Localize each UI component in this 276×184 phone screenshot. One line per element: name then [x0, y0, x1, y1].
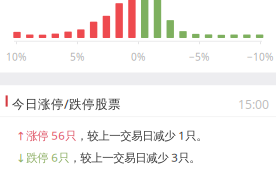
- staticText: 0%: [131, 50, 145, 64]
- staticText: 今日涨停/跌停股票: [12, 95, 121, 112]
- staticText: 10%: [6, 50, 26, 64]
- button[interactable]: 今日涨停/跌停股票: [0, 86, 276, 116]
- staticText: 15:00: [238, 96, 269, 113]
- staticText: ，较上一交易日减少 1只。: [76, 128, 207, 143]
- staticText: ↑涨停 56只: [16, 128, 76, 143]
- staticText: 5%: [70, 50, 84, 64]
- staticText: ，较上一交易日减少 3只。: [69, 150, 200, 165]
- staticText: ↓跌停 6只: [16, 150, 69, 165]
- staticText: −5%: [189, 50, 209, 64]
- staticText: −10%: [247, 50, 273, 64]
